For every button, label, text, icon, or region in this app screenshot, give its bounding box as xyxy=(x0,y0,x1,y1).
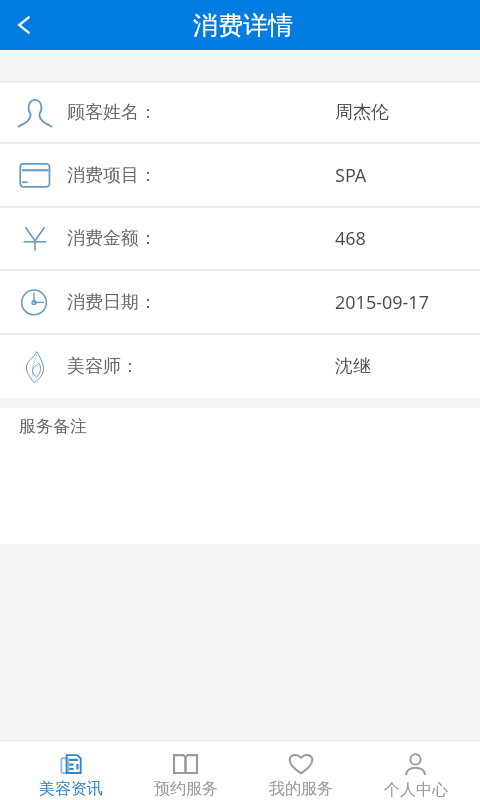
button[interactable]: 美容资讯 xyxy=(13,741,128,799)
staticText: 我的服务 xyxy=(269,779,333,799)
staticText: 消费日期： xyxy=(67,291,157,314)
staticText: 顾客姓名： xyxy=(67,101,157,124)
button[interactable]: Back xyxy=(0,0,48,50)
button[interactable]: 消费日期： xyxy=(0,271,480,335)
staticText: 服务备注 xyxy=(19,416,87,437)
button[interactable]: 美容师： xyxy=(0,335,480,398)
button[interactable]: 预约服务 xyxy=(128,741,243,799)
staticText: 预约服务 xyxy=(154,779,218,799)
button[interactable]: 消费金额： xyxy=(0,208,480,271)
button[interactable]: 个人中心 xyxy=(358,741,473,800)
staticText: SPA xyxy=(335,163,367,188)
staticText: 2015-09-17 xyxy=(335,290,429,315)
staticText: 周杰伦 xyxy=(335,101,389,124)
staticText: 消费项目： xyxy=(67,164,157,187)
staticText: 消费金额： xyxy=(67,227,157,250)
button[interactable]: 消费项目： xyxy=(0,144,480,208)
staticText: 468 xyxy=(335,226,366,251)
button[interactable]: 顾客姓名： xyxy=(0,83,480,144)
button[interactable]: 我的服务 xyxy=(243,741,358,799)
staticText: 沈继 xyxy=(335,355,371,378)
staticText: 个人中心 xyxy=(384,780,448,800)
staticText: 美容师： xyxy=(67,355,139,378)
staticText: 消费详情 xyxy=(193,10,293,41)
staticText: 美容资讯 xyxy=(39,779,103,799)
